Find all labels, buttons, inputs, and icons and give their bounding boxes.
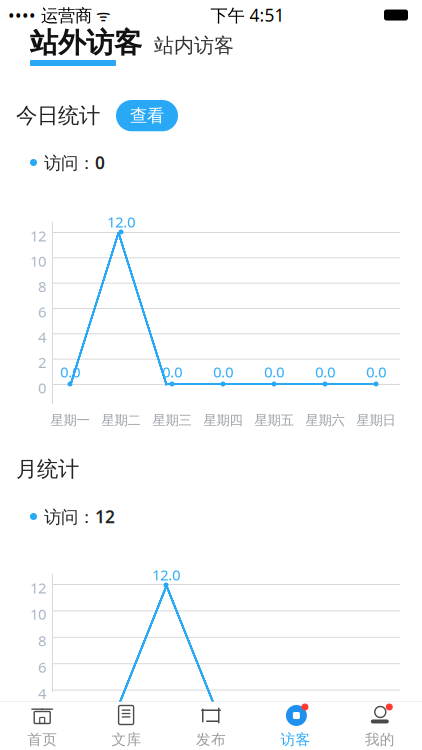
staticText: 星期五 bbox=[254, 412, 293, 428]
staticText: 12 bbox=[30, 226, 46, 245]
staticText: 星期二 bbox=[101, 412, 140, 428]
button[interactable]: 查看 bbox=[116, 100, 178, 131]
button[interactable]: 发布 bbox=[169, 699, 253, 750]
staticText: 4 bbox=[38, 327, 46, 347]
button[interactable]: 首页 bbox=[0, 699, 84, 750]
staticText: 0.0 bbox=[60, 362, 80, 381]
staticText: 星期一 bbox=[50, 412, 89, 428]
staticText: 下午 4:51 bbox=[210, 3, 284, 26]
button[interactable]: 文库 bbox=[84, 699, 169, 750]
staticText: 我的 bbox=[365, 730, 395, 748]
button[interactable]: 访客 bbox=[253, 699, 338, 750]
staticText: 0.0 bbox=[264, 362, 284, 381]
staticText: 访客 bbox=[280, 730, 310, 748]
staticText: 0 bbox=[38, 378, 46, 397]
staticText: 访问：0 bbox=[44, 151, 105, 174]
staticText: 星期日 bbox=[356, 412, 395, 428]
staticText: 发布 bbox=[196, 730, 226, 748]
staticText: 6 bbox=[38, 657, 46, 677]
staticText: 12.0 bbox=[152, 565, 180, 584]
staticText: 12.0 bbox=[107, 212, 135, 231]
button[interactable]: 站外访客 bbox=[30, 26, 142, 60]
staticText: 0.0 bbox=[162, 362, 182, 381]
staticText: 10 bbox=[30, 251, 46, 271]
staticText: 星期四 bbox=[203, 412, 242, 428]
staticText: 0.0 bbox=[366, 362, 386, 381]
staticText: 8 bbox=[38, 277, 46, 296]
staticText: 星期三 bbox=[152, 412, 191, 428]
button[interactable]: 我的 bbox=[338, 699, 422, 750]
staticText: 2 bbox=[38, 353, 46, 372]
staticText: 查看 bbox=[130, 105, 164, 126]
staticText: 4 bbox=[38, 684, 46, 703]
staticText: 10 bbox=[30, 604, 46, 624]
staticText: 0.0 bbox=[213, 362, 233, 381]
staticText: ᯤ bbox=[92, 4, 111, 26]
staticText: 今日统计 bbox=[16, 102, 100, 129]
staticText: 站外访客 bbox=[30, 26, 142, 60]
staticText: 0.0 bbox=[315, 362, 335, 381]
button[interactable]: 站内访客 bbox=[154, 33, 234, 58]
staticText: 8 bbox=[38, 631, 46, 650]
staticText: 首页 bbox=[27, 730, 57, 748]
staticText: 文库 bbox=[112, 730, 142, 748]
staticText: 月统计 bbox=[16, 456, 79, 482]
staticText: •••• 运营商 bbox=[8, 3, 92, 26]
staticText: 12 bbox=[30, 578, 46, 597]
staticText: 访问：12 bbox=[44, 505, 115, 528]
staticText: 站内访客 bbox=[154, 33, 234, 58]
staticText: 6 bbox=[38, 302, 46, 321]
staticText: 星期六 bbox=[305, 412, 344, 428]
